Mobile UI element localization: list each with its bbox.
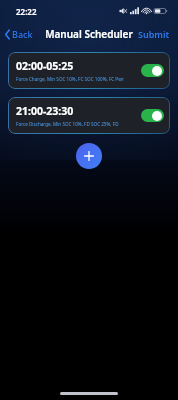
- staticText: Submit: [138, 28, 170, 40]
- button[interactable]: 02:00-05:25: [8, 52, 170, 89]
- button[interactable]: Submit: [130, 25, 178, 43]
- staticText: 22:22: [16, 6, 37, 17]
- staticText: 21:00-23:30: [16, 104, 74, 118]
- staticText: 02:00-05:25: [16, 59, 74, 73]
- button[interactable]: Back: [0, 25, 39, 43]
- staticText: Force Discharge, Min SOC 10%, FD SOC 25%…: [16, 121, 124, 127]
- staticText: Back: [12, 28, 33, 40]
- staticText: Manual Scheduler: [45, 27, 133, 41]
- staticText: Force Charge, Min SOC 10%, FC SOC 100%, …: [16, 76, 124, 82]
- button[interactable]: Toggle schedule: [141, 64, 164, 77]
- button[interactable]: Add schedule: [76, 143, 102, 169]
- button[interactable]: Toggle schedule: [141, 109, 164, 122]
- button[interactable]: 21:00-23:30: [8, 97, 170, 134]
